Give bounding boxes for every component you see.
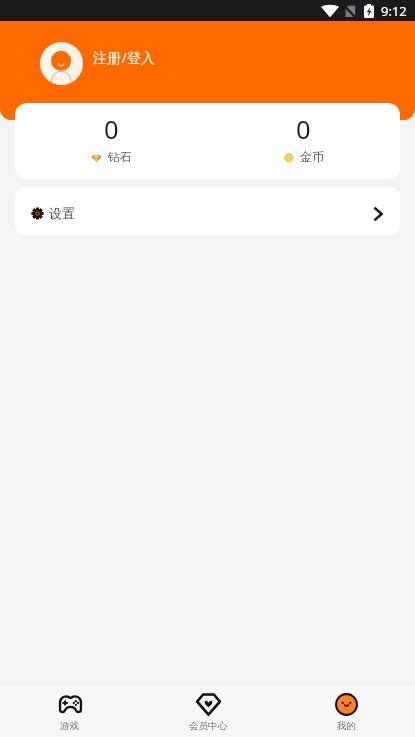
- staticText: 金币: [300, 149, 324, 164]
- staticText: 注册/登入: [93, 48, 156, 67]
- staticText: 9:12: [381, 2, 407, 20]
- staticText: 设置: [49, 205, 75, 221]
- staticText: 0: [104, 112, 119, 147]
- button[interactable]: 设置: [15, 187, 400, 235]
- button[interactable]: 注册/登入: [0, 21, 415, 103]
- staticText: 0: [296, 112, 311, 147]
- button[interactable]: Member center: [139, 685, 277, 737]
- button[interactable]: Games: [0, 685, 139, 737]
- button[interactable]: 0: [15, 103, 207, 179]
- staticText: 会员中心: [189, 720, 227, 732]
- staticText: 游戏: [60, 720, 79, 732]
- staticText: 我的: [337, 720, 356, 732]
- button[interactable]: 0: [207, 103, 400, 179]
- button[interactable]: Mine: [277, 685, 415, 737]
- staticText: 钻石: [108, 149, 132, 164]
